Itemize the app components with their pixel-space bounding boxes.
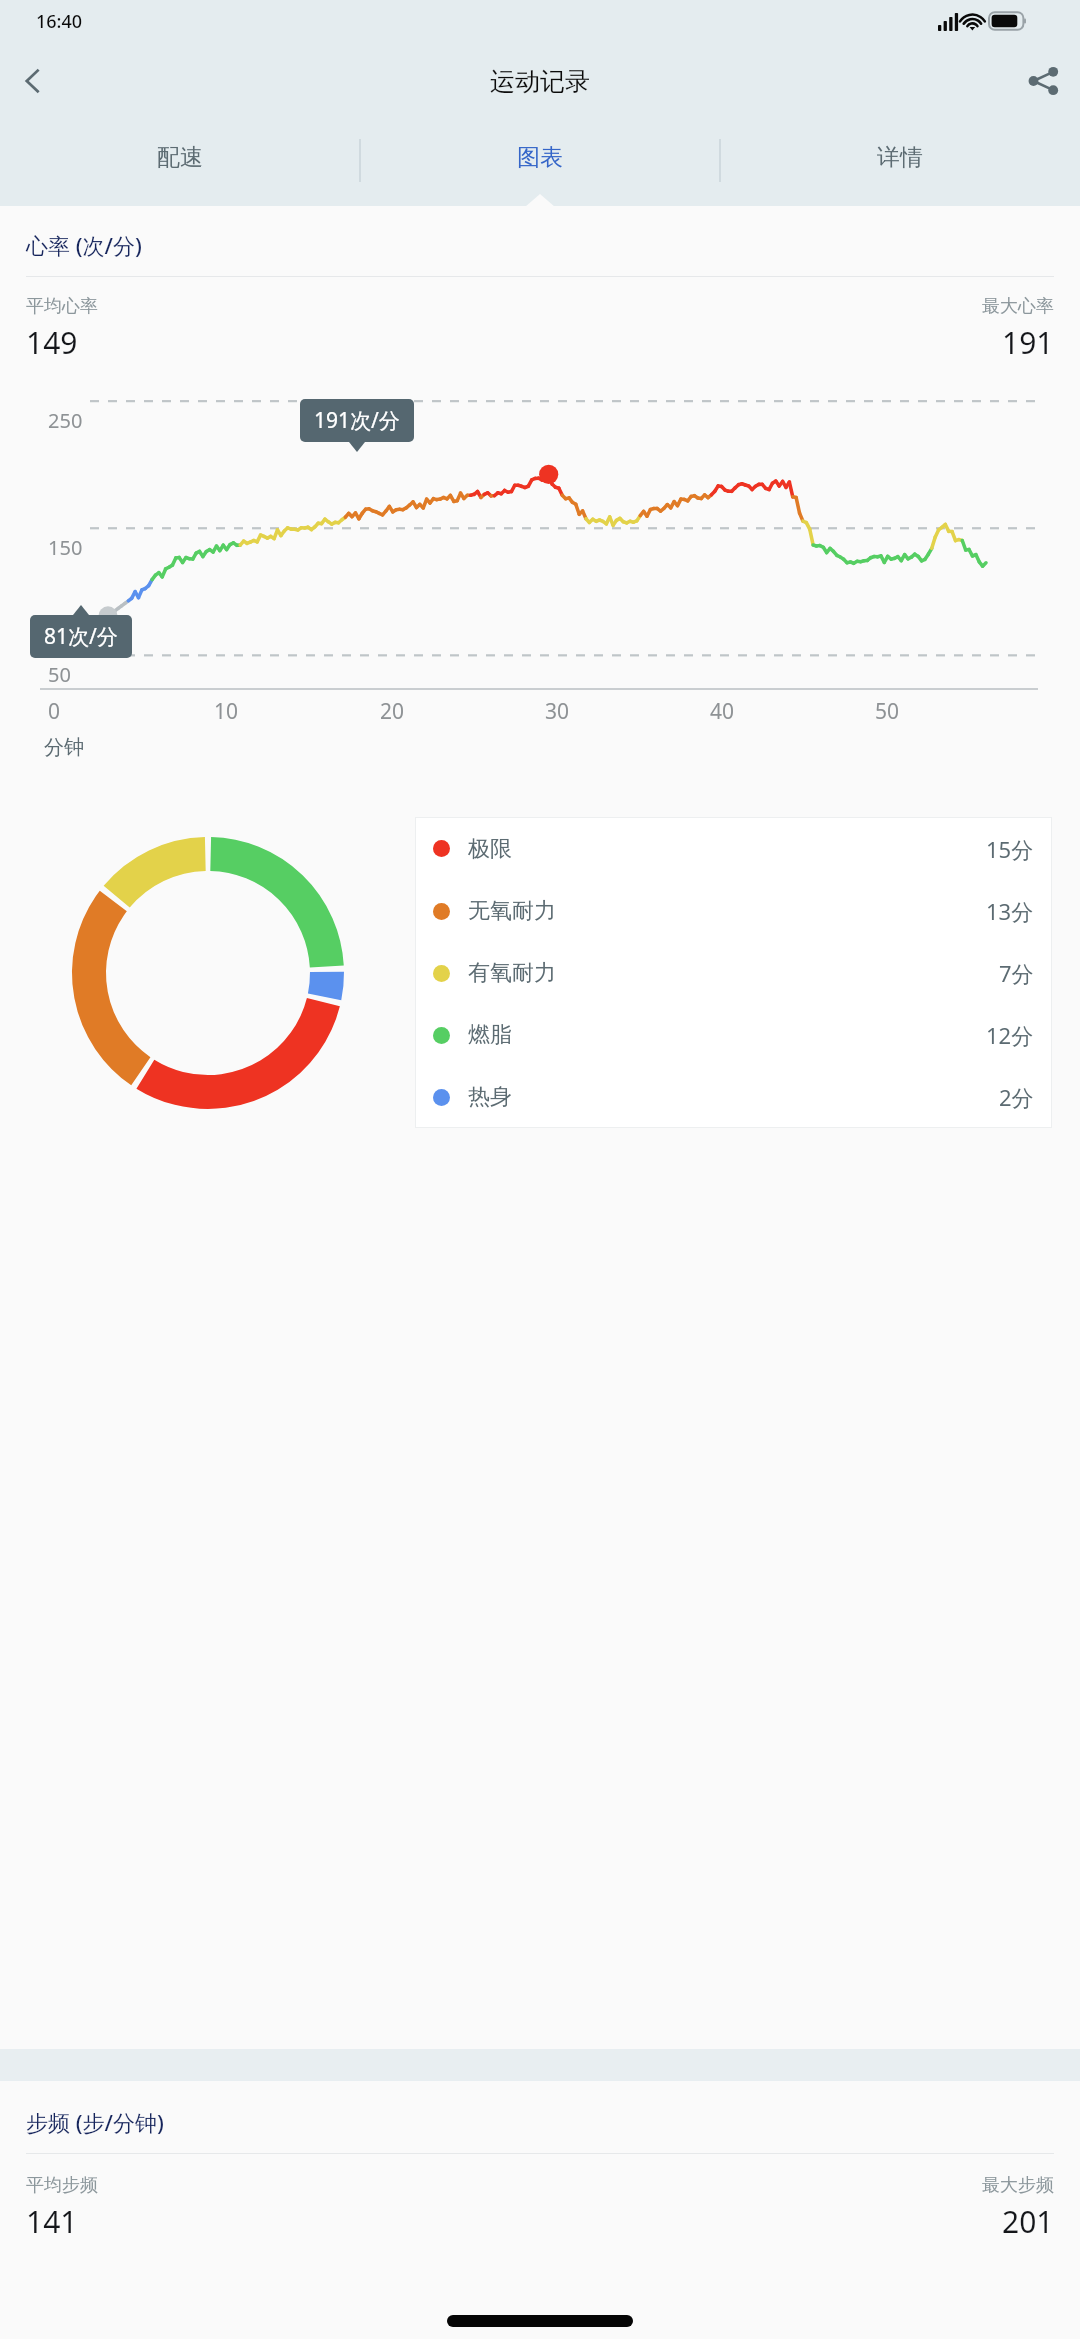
staticText: 191 [1002, 322, 1054, 363]
staticText: 热身 [468, 1083, 512, 1111]
staticText: 分钟 [44, 735, 84, 760]
staticText: 30 [545, 697, 570, 726]
staticText: 心率 (次/分) [26, 230, 142, 260]
staticText: 16:40 [36, 9, 83, 34]
staticText: 13分 [986, 896, 1034, 926]
staticText: 7分 [999, 958, 1034, 988]
staticText: 150 [48, 534, 83, 561]
staticText: 极限 [468, 835, 512, 863]
staticText: 燃脂 [468, 1021, 512, 1049]
staticText: 20 [380, 697, 405, 726]
staticText: 运动记录 [490, 66, 590, 97]
staticText: 2分 [999, 1082, 1034, 1112]
staticText: 40 [710, 697, 735, 726]
staticText: 最大步频 [982, 2174, 1054, 2197]
staticText: 步频 (步/分钟) [26, 2107, 164, 2137]
button[interactable]: 无氧耐力 [433, 880, 1034, 942]
staticText: 平均心率 [26, 295, 98, 318]
staticText: 最大心率 [982, 295, 1054, 318]
staticText: 15分 [986, 834, 1034, 864]
staticText: 平均步频 [26, 2174, 98, 2197]
button[interactable]: 热身 [433, 1066, 1034, 1128]
button[interactable]: 极限 [433, 817, 1034, 880]
staticText: 10 [214, 697, 239, 726]
staticText: 详情 [877, 143, 923, 172]
button[interactable]: 详情 [720, 120, 1080, 206]
button[interactable]: 有氧耐力 [433, 942, 1034, 1004]
staticText: 配速 [157, 143, 203, 172]
staticText: 250 [48, 407, 83, 434]
button[interactable]: 燃脂 [433, 1004, 1034, 1066]
button[interactable]: 图表 [360, 120, 720, 206]
button[interactable]: 配速 [0, 120, 360, 206]
staticText: 50 [48, 661, 71, 688]
button[interactable]: Back [4, 50, 62, 112]
staticText: 201 [1002, 2201, 1054, 2242]
button[interactable]: Share [1014, 48, 1072, 114]
staticText: 有氧耐力 [468, 959, 556, 987]
staticText: 50 [875, 697, 900, 726]
staticText: 0 [48, 697, 61, 726]
staticText: 无氧耐力 [468, 897, 556, 925]
staticText: 图表 [517, 143, 563, 172]
staticText: 141 [26, 2201, 78, 2242]
staticText: 191次/分 [314, 406, 400, 435]
staticText: 149 [26, 322, 78, 363]
staticText: 12分 [986, 1020, 1034, 1050]
staticText: 81次/分 [44, 622, 118, 651]
